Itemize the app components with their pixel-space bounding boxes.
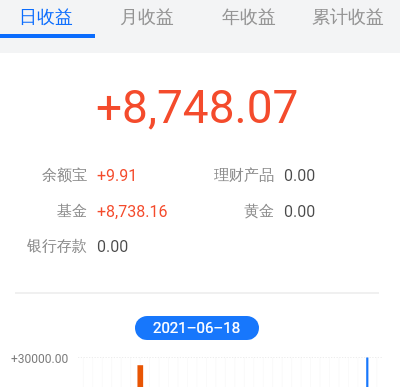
staticText: 0.00 [284,166,316,185]
button[interactable]: 黄金 [212,200,316,222]
button[interactable]: 年收益 [202,0,295,34]
staticText: +8,748.07 [96,80,299,134]
staticText: 理财产品 [214,166,274,185]
button[interactable]: 2021–06–18 [135,316,259,340]
button[interactable]: 累计收益 [295,0,400,34]
staticText: +9.91 [97,166,138,185]
button[interactable]: 日收益 [0,0,92,34]
staticText: 黄金 [244,202,274,221]
button[interactable]: 银行存款 [25,235,129,257]
staticText: 余额宝 [42,166,87,185]
button[interactable]: 基金 [25,200,168,222]
staticText: +30000.00 [11,352,69,366]
staticText: 银行存款 [27,237,87,256]
staticText: 0.00 [284,202,316,221]
staticText: 2021–06–18 [153,319,241,337]
staticText: 基金 [57,202,87,221]
button[interactable]: 余额宝 [25,164,138,186]
staticText: 月收益 [120,6,174,29]
staticText: 累计收益 [312,6,384,29]
staticText: 日收益 [19,6,73,29]
button[interactable]: 月收益 [92,0,202,34]
button[interactable]: 理财产品 [212,164,316,186]
staticText: 年收益 [222,6,276,29]
staticText: +8,738.16 [97,202,168,221]
staticText: 0.00 [97,237,129,256]
